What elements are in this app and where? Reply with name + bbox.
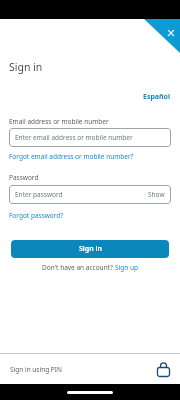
button[interactable]: Enter password bbox=[9, 185, 171, 204]
staticText: Sign in bbox=[9, 60, 43, 74]
staticText: Password bbox=[9, 173, 39, 182]
button[interactable]: Español bbox=[143, 92, 171, 102]
button[interactable]: Sign in bbox=[11, 240, 169, 258]
staticText: Sign in bbox=[79, 244, 102, 254]
button[interactable]: Enter email address or mobile number bbox=[9, 128, 171, 147]
staticText: Don't have an account? bbox=[42, 263, 115, 272]
button[interactable]: Forgot password? bbox=[9, 211, 64, 220]
button[interactable]: Sign up bbox=[115, 263, 138, 272]
staticText: Email address or mobile number bbox=[9, 117, 109, 126]
button[interactable]: Show bbox=[148, 190, 171, 199]
staticText: Sign in using PIN bbox=[10, 365, 62, 374]
staticText: Enter email address or mobile number bbox=[15, 133, 133, 142]
staticText: Enter password bbox=[15, 190, 63, 199]
button[interactable] bbox=[144, 19, 180, 53]
button[interactable]: Sign in using PIN bbox=[0, 354, 180, 384]
button[interactable]: Forgot email address or mobile number? bbox=[9, 152, 134, 161]
